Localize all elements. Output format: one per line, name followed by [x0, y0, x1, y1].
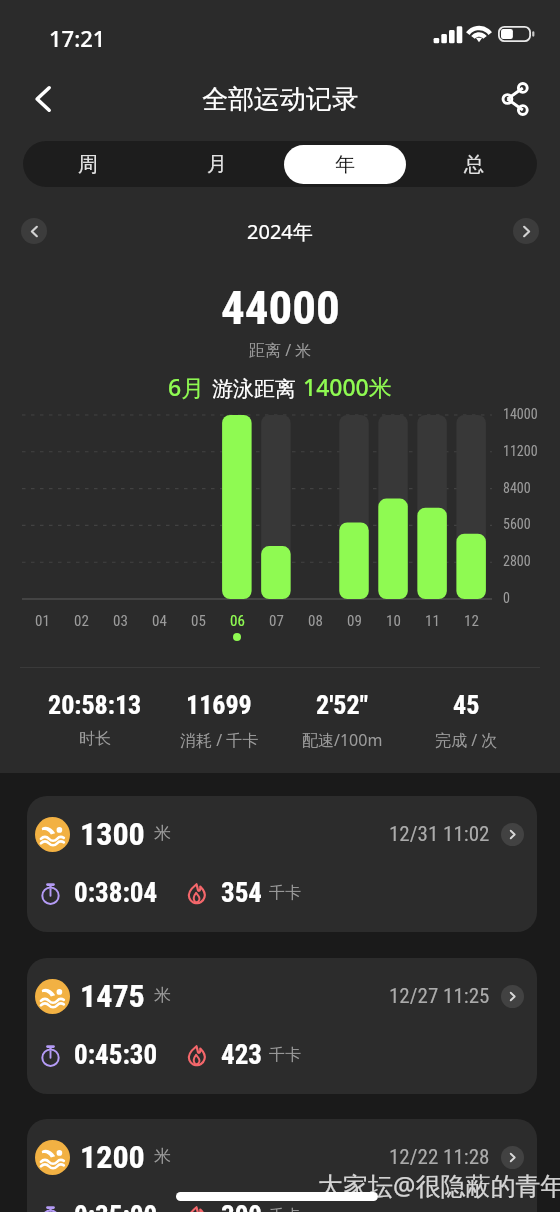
- button[interactable]: 1300: [27, 796, 537, 932]
- staticText: 02: [74, 612, 89, 630]
- staticText: 总: [464, 152, 484, 177]
- staticText: 11: [425, 612, 440, 630]
- staticText: 5600: [503, 516, 531, 532]
- button[interactable]: Share: [490, 62, 540, 136]
- staticText: 20:58:13: [48, 690, 142, 720]
- staticText: 03: [113, 612, 128, 630]
- staticText: 04: [152, 612, 167, 630]
- staticText: 1300: [80, 815, 145, 851]
- button[interactable]: Previous year: [21, 218, 47, 244]
- staticText: 年: [335, 152, 355, 177]
- staticText: 12: [464, 612, 479, 630]
- staticText: 17:21: [49, 23, 106, 53]
- staticText: 12/27 11:25: [389, 984, 490, 1009]
- staticText: 0:35:00: [74, 1200, 158, 1212]
- staticText: 配速/100m: [302, 729, 383, 751]
- staticText: 1475: [80, 977, 145, 1013]
- staticText: 0:45:30: [74, 1039, 158, 1071]
- staticText: 14000米: [303, 371, 392, 402]
- staticText: 14000: [503, 406, 538, 422]
- button[interactable]: 周: [23, 141, 152, 187]
- staticText: 米: [154, 1146, 171, 1167]
- staticText: 游泳距离: [212, 376, 296, 402]
- staticText: 月: [207, 152, 227, 177]
- staticText: 06: [230, 612, 245, 630]
- staticText: 300: [221, 1200, 262, 1212]
- button[interactable]: 总: [409, 141, 538, 187]
- staticText: 6月: [168, 371, 205, 402]
- staticText: 全部运动记录: [202, 83, 358, 116]
- staticText: 米: [154, 823, 171, 844]
- staticText: 07: [269, 612, 284, 630]
- staticText: 千卡: [269, 883, 301, 903]
- staticText: 8400: [503, 480, 531, 496]
- staticText: 01: [35, 612, 50, 630]
- staticText: 10: [386, 612, 401, 630]
- staticText: 11200: [503, 443, 538, 459]
- staticText: 0: [503, 590, 510, 606]
- button[interactable]: 月: [152, 141, 281, 187]
- staticText: 45: [453, 690, 480, 720]
- staticText: 时长: [79, 729, 111, 749]
- button[interactable]: Back: [18, 62, 68, 136]
- staticText: 1200: [80, 1138, 145, 1174]
- staticText: 05: [191, 612, 206, 630]
- staticText: 米: [154, 985, 171, 1006]
- staticText: 2024年: [247, 218, 313, 245]
- staticText: 12/22 11:28: [389, 1145, 490, 1170]
- staticText: 44000: [221, 280, 340, 335]
- staticText: 09: [347, 612, 362, 630]
- staticText: 千卡: [269, 1045, 301, 1065]
- staticText: 千卡: [269, 1206, 301, 1212]
- button[interactable]: 1200: [27, 1119, 537, 1212]
- staticText: 354: [221, 877, 262, 909]
- staticText: 11699: [186, 690, 252, 720]
- button[interactable]: 1475: [27, 958, 537, 1094]
- button[interactable]: Next year: [513, 218, 539, 244]
- staticText: 周: [78, 152, 98, 177]
- button[interactable]: 年: [280, 141, 409, 187]
- staticText: 大家坛@很隐蔽的青年: [318, 1168, 560, 1202]
- staticText: 完成 / 次: [435, 729, 498, 751]
- staticText: 2'52": [316, 690, 368, 720]
- staticText: 2800: [503, 553, 531, 569]
- staticText: 0:38:04: [74, 877, 158, 909]
- staticText: 12/31 11:02: [389, 822, 490, 847]
- staticText: 08: [308, 612, 323, 630]
- staticText: 423: [221, 1039, 262, 1071]
- staticText: 距离 / 米: [249, 339, 312, 361]
- staticText: 消耗 / 千卡: [180, 729, 259, 751]
